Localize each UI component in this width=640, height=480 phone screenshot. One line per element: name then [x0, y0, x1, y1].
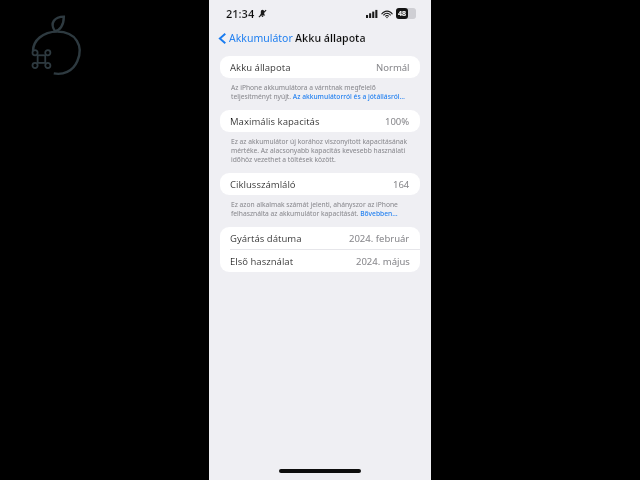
staticText: Akku állapota	[230, 61, 291, 74]
button[interactable]: Akkumulátor	[216, 29, 296, 47]
staticText: Maximális kapacitás	[230, 115, 320, 128]
staticText: Akkumulátor	[229, 31, 293, 45]
button[interactable]: Első használat	[220, 250, 420, 272]
staticText: Akku állapota	[295, 31, 366, 45]
staticText: Ciklusszámláló	[230, 178, 296, 191]
staticText: Normál	[376, 61, 410, 74]
staticText: 164	[393, 178, 410, 191]
staticText: 48	[398, 9, 407, 19]
staticText: Ez az akkumulátor új korához viszonyítot…	[231, 137, 414, 164]
button[interactable]: Ciklusszámláló	[220, 173, 420, 195]
staticText: Első használat	[230, 255, 294, 268]
staticText: 2024. május	[356, 255, 410, 268]
button[interactable]: Maximális kapacitás	[220, 110, 420, 132]
button[interactable]: Akku állapota	[220, 56, 420, 78]
staticText: 100%	[385, 115, 410, 128]
staticText: 21:34	[226, 6, 255, 21]
staticText: 2024. február	[349, 232, 410, 245]
button[interactable]: Az iPhone akkumulátora a várntnak megfel…	[231, 83, 414, 101]
button[interactable]: Ciklusszámláló	[220, 173, 420, 195]
staticText: Gyártás dátuma	[230, 232, 302, 245]
button[interactable]: Maximális kapacitás	[220, 110, 420, 132]
button[interactable]: Akku állapota	[220, 56, 420, 78]
button[interactable]: Ez azon alkalmak számát jelenti, ahánysz…	[231, 200, 414, 218]
button[interactable]: Gyártás dátuma	[220, 227, 420, 249]
